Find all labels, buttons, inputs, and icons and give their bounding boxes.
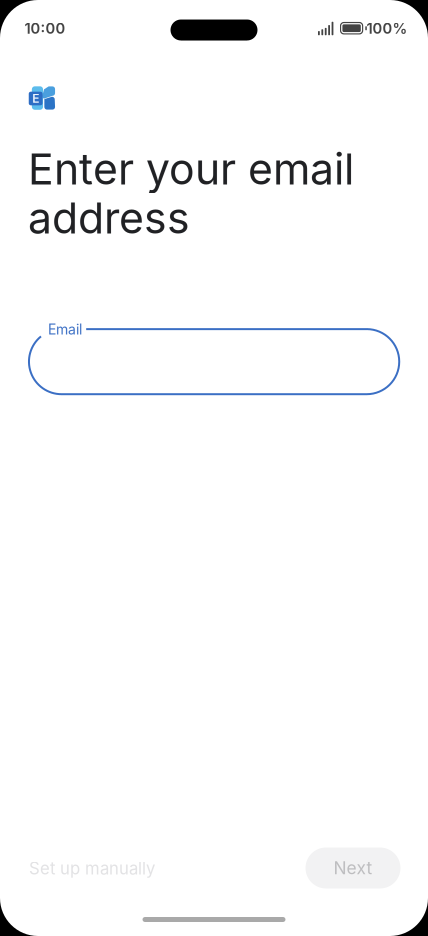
staticText: 100% [366, 20, 407, 37]
staticText: 10:00 [24, 20, 65, 37]
staticText: address [28, 192, 190, 244]
staticText: Email [48, 321, 82, 338]
staticText: Enter your email [28, 143, 354, 195]
staticText: E [32, 91, 39, 106]
button[interactable]: Next [305, 847, 400, 888]
button[interactable]: Set up manually [14, 847, 169, 889]
staticText: Next [333, 857, 372, 878]
staticText: Set up manually [29, 858, 155, 879]
